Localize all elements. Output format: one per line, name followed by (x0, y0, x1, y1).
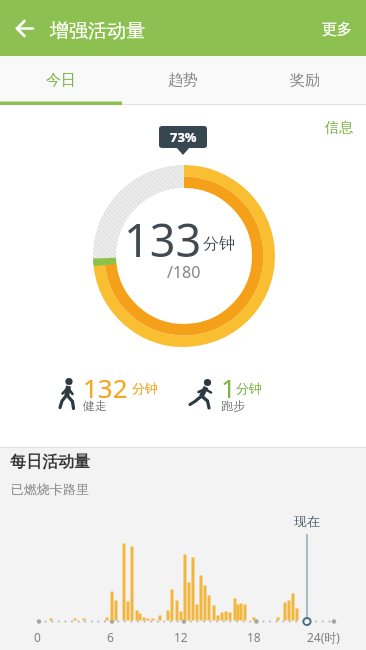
staticText: 分钟 (203, 234, 235, 254)
staticText: 信息 (325, 119, 353, 137)
staticText: 跑步 (221, 398, 245, 413)
staticText: /180 (167, 261, 201, 283)
staticText: 已燃烧卡路里 (11, 481, 89, 497)
staticText: 132 (83, 370, 128, 405)
staticText: 奖励 (290, 71, 320, 90)
staticText: 1 (221, 370, 236, 405)
staticText: 6 (107, 629, 114, 645)
staticText: 133 (124, 209, 202, 270)
staticText: 18 (247, 629, 261, 645)
staticText: 今日 (46, 71, 76, 90)
staticText: 0 (34, 629, 41, 645)
staticText: 分钟 (236, 380, 262, 396)
staticText: 分钟 (132, 380, 158, 396)
staticText: 趋势 (168, 71, 198, 90)
staticText: 73% (170, 128, 197, 146)
staticText: 12 (174, 629, 188, 645)
staticText: 增强活动量 (50, 19, 145, 43)
staticText: 健走 (83, 398, 107, 413)
staticText: 24(时) (307, 629, 340, 645)
staticText: 更多 (322, 20, 352, 39)
staticText: 现在 (294, 513, 320, 529)
staticText: 每日活动量 (10, 452, 90, 472)
